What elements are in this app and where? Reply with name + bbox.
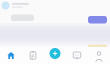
- button[interactable]: Messages: [66, 47, 88, 64]
- button[interactable]: New: [48, 47, 61, 60]
- button[interactable]: Tasks: [22, 47, 44, 64]
- button[interactable]: Home: [0, 47, 22, 64]
- button[interactable]: Create: [44, 47, 66, 64]
- button[interactable]: Profile: [88, 47, 110, 64]
